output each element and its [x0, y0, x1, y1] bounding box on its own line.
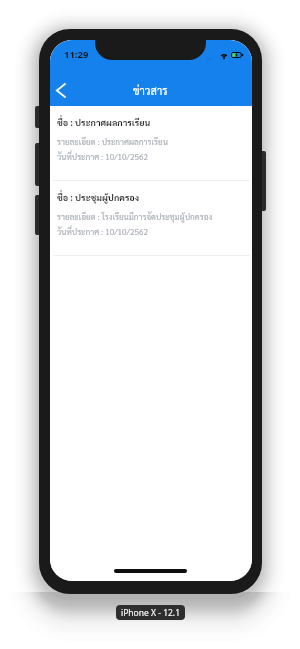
button[interactable]: ชื่อ : ประกาศผลการเรียน	[50, 106, 252, 180]
staticText: ชื่อ : ประกาศผลการเรียน	[57, 116, 151, 128]
staticText: ข่าวสาร	[133, 83, 168, 97]
staticText: iPhone X - 12.1	[121, 607, 180, 619]
staticText: รายละเอียด : โรงเรียนมีการจัดประชุมผู้ปก…	[57, 211, 213, 222]
staticText: วันที่ประกาศ : 10/10/2562	[57, 151, 148, 162]
staticText: 11:29	[64, 48, 89, 61]
button[interactable]: Back	[50, 75, 74, 105]
button[interactable]: ชื่อ : ประชุมผู้ปกครอง	[50, 181, 252, 255]
staticText: วันที่ประกาศ : 10/10/2562	[57, 226, 148, 237]
staticText: รายละเอียด : ประกาศผลการเรียน	[57, 136, 168, 147]
staticText: ชื่อ : ประชุมผู้ปกครอง	[57, 191, 140, 203]
